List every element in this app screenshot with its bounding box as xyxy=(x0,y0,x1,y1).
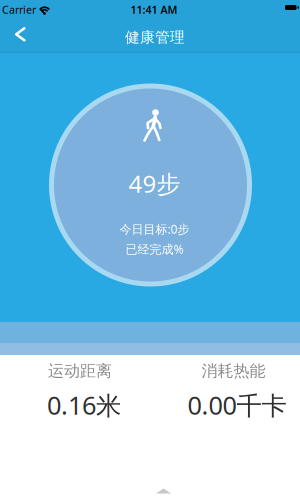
staticText: 49步 xyxy=(128,168,180,199)
staticText: 运动距离 xyxy=(48,361,112,381)
button[interactable]: Back xyxy=(0,20,34,52)
staticText: 0.16米 xyxy=(47,388,121,422)
staticText: 消耗热能 xyxy=(201,361,265,381)
staticText: 健康管理 xyxy=(125,28,185,46)
staticText: 已经完成% xyxy=(125,241,183,257)
staticText: 11:41 AM xyxy=(130,2,177,17)
staticText: 0.00千卡 xyxy=(187,388,286,422)
staticText: Carrier xyxy=(2,2,36,17)
staticText: 今日目标:0步 xyxy=(119,221,189,237)
